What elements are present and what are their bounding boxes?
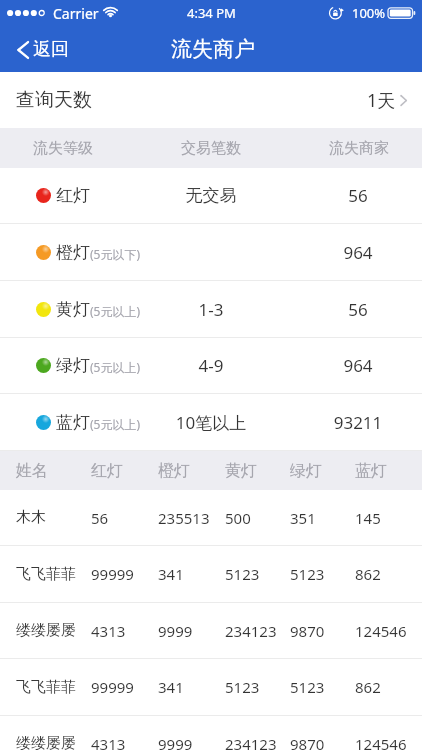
staticText: 1天 [367,88,396,113]
staticText: 5123 [290,564,325,584]
staticText: 黄灯 [56,299,90,320]
staticText: 235513 [158,508,210,528]
staticText: 红灯 [56,185,90,206]
staticText: 缕缕屡屡 [16,734,76,750]
staticText: 9999 [158,621,193,641]
staticText: 9870 [290,621,325,641]
staticText: 无交易 [141,185,281,206]
staticText: 99999 [91,677,134,697]
staticText: (5元以下) [90,246,141,262]
staticText: 56 [91,508,109,528]
staticText: 红灯 [91,461,123,481]
staticText: 查询天数 [16,88,92,112]
staticText: 93211 [288,411,422,434]
staticText: 862 [355,564,381,584]
button[interactable]: 红灯 [0,168,422,224]
staticText: 蓝灯 [355,461,387,481]
staticText: 10笔以上 [141,411,281,434]
staticText: 橙灯 [56,242,90,263]
staticText: 缕缕屡屡 [16,621,76,640]
staticText: 返回 [33,38,69,61]
button[interactable]: 飞飞菲菲 [0,546,422,603]
staticText: 5123 [290,677,325,697]
staticText: (5元以上) [90,359,141,375]
button[interactable]: 缕缕屡屡 [0,603,422,659]
staticText: 1-3 [141,298,281,321]
staticText: 4-9 [141,354,281,377]
staticText: 234123 [225,621,277,641]
staticText: Carrier [53,4,99,23]
staticText: 飞飞菲菲 [16,678,76,697]
staticText: 流失等级 [33,139,93,158]
staticText: 124546 [355,621,407,641]
staticText: 56 [288,184,422,207]
staticText: 5123 [225,564,260,584]
staticText: 862 [355,677,381,697]
other: Rotation lock [329,6,345,20]
staticText: 124546 [355,734,407,750]
button[interactable]: 黄灯 [0,281,422,338]
staticText: 351 [290,508,316,528]
staticText: 橙灯 [158,461,190,481]
staticText: (5元以上) [90,416,141,432]
button[interactable]: 橙灯 [0,224,422,281]
staticText: 4313 [91,734,126,750]
button[interactable]: 查询天数 [0,72,422,128]
staticText: 5123 [225,677,260,697]
staticText: 4:34 PM [187,4,236,22]
staticText: 341 [158,564,184,584]
staticText: 飞飞菲菲 [16,565,76,584]
staticText: 流失商家 [329,139,389,158]
staticText: 流失商户 [171,36,255,62]
staticText: 交易笔数 [181,139,241,158]
staticText: 964 [288,241,422,264]
staticText: 9999 [158,734,193,750]
staticText: 绿灯 [56,355,90,376]
staticText: 9870 [290,734,325,750]
staticText: 56 [288,298,422,321]
staticText: 145 [355,508,381,528]
staticText: 500 [225,508,251,528]
staticText: (5元以上) [90,303,141,319]
button[interactable]: 缕缕屡屡 [0,716,422,750]
staticText: 绿灯 [290,461,322,481]
staticText: 234123 [225,734,277,750]
staticText: 341 [158,677,184,697]
staticText: 蓝灯 [56,412,90,433]
button[interactable]: 返回 [0,30,83,69]
staticText: 964 [288,354,422,377]
staticText: 木木 [16,508,46,527]
staticText: 黄灯 [225,461,257,481]
button[interactable]: 木木 [0,490,422,546]
button[interactable]: 蓝灯 [0,394,422,451]
button[interactable]: 飞飞菲菲 [0,659,422,716]
staticText: 姓名 [16,461,48,481]
button[interactable]: 绿灯 [0,338,422,394]
staticText: 4313 [91,621,126,641]
staticText: 100% [352,4,386,22]
staticText: 99999 [91,564,134,584]
